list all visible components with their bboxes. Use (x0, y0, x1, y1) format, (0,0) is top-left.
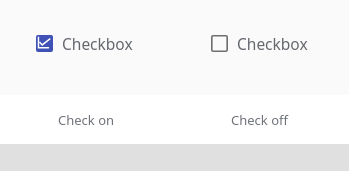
button[interactable]: Checkbox, checked (36, 33, 133, 54)
button[interactable]: Check off (174, 95, 349, 144)
staticText: Check on (58, 111, 115, 129)
button[interactable]: Checkbox, unchecked (211, 33, 308, 54)
staticText: Checkbox (237, 33, 308, 54)
staticText: Check off (231, 111, 288, 129)
button[interactable]: Check on (0, 95, 174, 144)
staticText: Checkbox (62, 33, 133, 54)
